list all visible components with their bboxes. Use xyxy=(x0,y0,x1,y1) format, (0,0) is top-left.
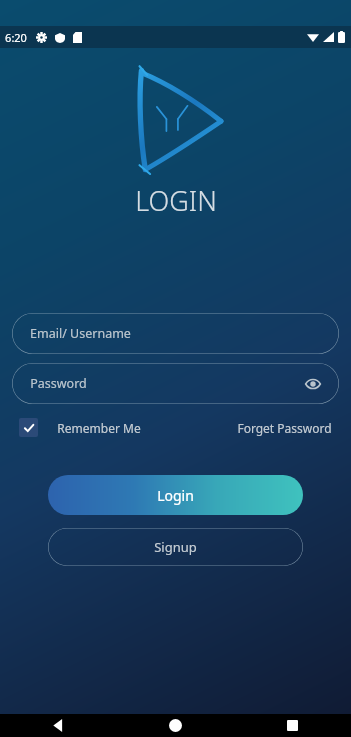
button[interactable]: Forget Password xyxy=(237,420,332,436)
button[interactable]: Remember Me xyxy=(19,418,141,437)
button[interactable]: Back xyxy=(0,714,117,737)
staticText: LOGIN xyxy=(135,182,217,219)
button[interactable]: Signup xyxy=(48,528,303,566)
staticText: Login xyxy=(157,486,194,505)
staticText: Remember Me xyxy=(57,420,141,436)
button[interactable]: Home xyxy=(117,714,234,737)
staticText: Forget Password xyxy=(237,420,332,436)
staticText: Email/ Username xyxy=(30,325,131,342)
button[interactable]: Login xyxy=(48,475,303,515)
button[interactable]: Show password xyxy=(303,374,323,394)
button[interactable]: Email/ Username xyxy=(12,313,339,354)
staticText: 6:20 xyxy=(5,30,27,45)
staticText: Signup xyxy=(154,538,197,556)
button[interactable]: Password xyxy=(12,363,339,404)
staticText: Password xyxy=(30,375,87,392)
button[interactable]: Recents xyxy=(234,714,351,737)
